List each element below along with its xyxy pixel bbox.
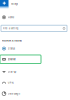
staticText: Network & Internet [2, 39, 22, 42]
button[interactable]: Data usage [0, 89, 41, 98]
staticText: Home [8, 16, 14, 19]
staticText: Settings [11, 3, 18, 5]
button[interactable]: Ethernet [0, 55, 41, 64]
button[interactable]: Dial-up [0, 67, 41, 76]
button[interactable]: Home [0, 13, 41, 22]
button[interactable]: Status [0, 44, 41, 53]
staticText: Status [8, 47, 15, 50]
staticText: VPN [8, 81, 14, 84]
staticText: Ethernet [8, 58, 16, 61]
staticText: Find a setting [3, 27, 19, 30]
staticText: Dial-up [8, 70, 17, 73]
staticText: Data usage [8, 92, 20, 95]
button[interactable]: VPN [0, 79, 41, 87]
